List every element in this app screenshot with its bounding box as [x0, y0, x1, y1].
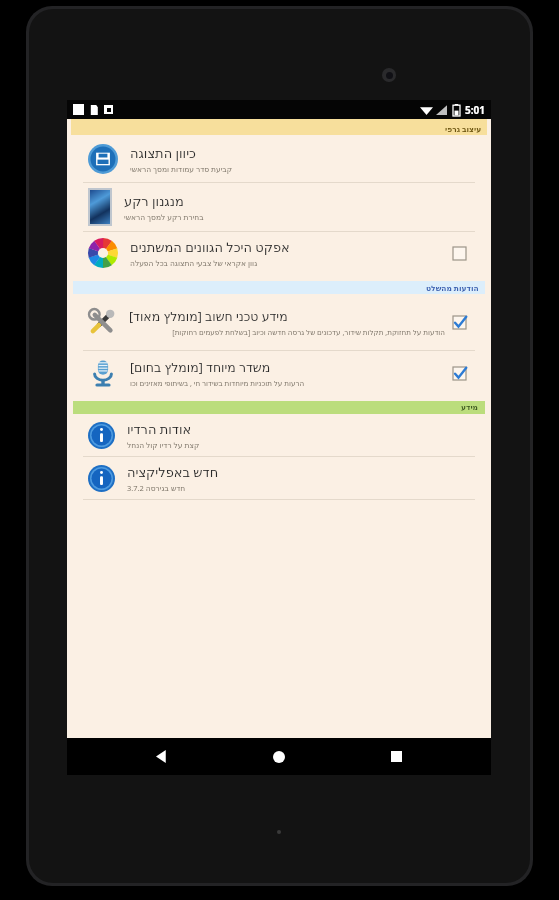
staticText: בחירת רקע למסך הראשי: [124, 212, 204, 222]
staticText: קצת על רדיו קול הנחל: [127, 440, 200, 450]
staticText: כיוון התצוגה: [130, 144, 196, 162]
staticText: אפקט היכל הגוונים המשתנים: [130, 238, 290, 256]
button[interactable]: כיוון התצוגה: [67, 135, 491, 182]
staticText: מנגנון רקע: [124, 192, 184, 210]
staticText: חדש באפליקציה: [127, 463, 219, 481]
button[interactable]: מנגנון רקע: [67, 183, 491, 231]
button[interactable]: Home: [257, 738, 301, 775]
staticText: משדר מיוחד [מומלץ בחום]: [130, 359, 271, 376]
staticText: מידע: [461, 403, 479, 412]
staticText: קביעת סדר עמודות ומסך הראשי: [130, 164, 233, 174]
button[interactable]: חדש באפליקציה: [67, 457, 491, 499]
staticText: חדש בגירסה 3.7.2: [127, 483, 186, 493]
staticText: עיצוב גרפי: [445, 124, 482, 134]
staticText: הרעות על תוכניות מיוחדות בשידור חי , בשי…: [130, 378, 305, 388]
button[interactable]: Unchecked: [445, 239, 473, 267]
staticText: גוון אקראי של צבעי התצוגה בכל הפעלה: [130, 258, 258, 268]
staticText: הודעות מהשלט: [426, 283, 479, 293]
button[interactable]: אודות הרדיו: [67, 414, 491, 456]
button[interactable]: משדר מיוחד [מומלץ בחום]: [67, 351, 491, 395]
staticText: 5:01: [465, 103, 485, 117]
button[interactable]: Recents: [374, 738, 418, 775]
button[interactable]: Checked: [445, 308, 473, 336]
staticText: אודות הרדיו: [127, 420, 192, 438]
button[interactable]: מידע טכני חשוב [מומלץ מאוד]: [67, 294, 491, 350]
staticText: הודעות על תחזוקת, תקלות שידור, עדכונים ש…: [129, 327, 445, 337]
button[interactable]: אפקט היכל הגוונים המשתנים: [67, 232, 491, 274]
staticText: מידע טכני חשוב [מומלץ מאוד]: [129, 308, 288, 325]
button[interactable]: Checked: [445, 359, 473, 387]
button[interactable]: Back: [140, 738, 184, 775]
